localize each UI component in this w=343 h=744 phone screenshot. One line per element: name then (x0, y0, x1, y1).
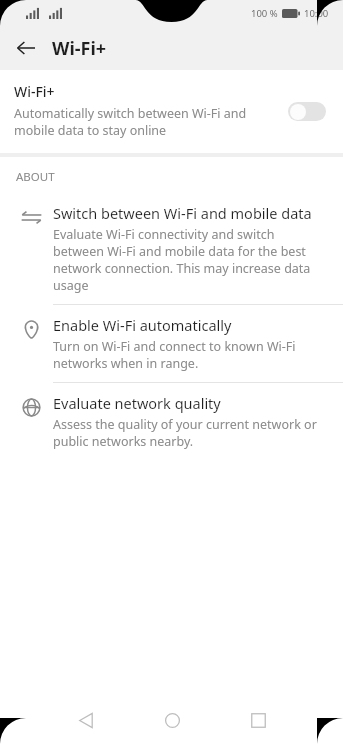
staticText: 100 % (251, 7, 278, 20)
button[interactable]: Home (146, 696, 198, 744)
button[interactable]: Switch between Wi-Fi and mobile data (0, 193, 343, 305)
staticText: Switch between Wi-Fi and mobile data (53, 203, 312, 223)
button[interactable]: Back (60, 696, 112, 744)
button[interactable]: Wi-Fi+ toggle (285, 96, 329, 126)
staticText: Enable Wi-Fi automatically (53, 315, 232, 335)
staticText: 10:00 (304, 7, 329, 20)
button[interactable]: Evaluate network quality (0, 383, 343, 460)
staticText: Automatically switch between Wi-Fi and m… (14, 105, 273, 139)
staticText: Turn on Wi-Fi and connect to known Wi-Fi… (53, 338, 327, 372)
staticText: Evaluate network quality (53, 393, 221, 413)
button[interactable]: Recent apps (232, 696, 284, 744)
staticText: Wi-Fi+ (52, 36, 107, 61)
staticText: Wi-Fi+ (14, 82, 55, 101)
staticText: Evaluate Wi-Fi connectivity and switch b… (53, 226, 327, 294)
button[interactable]: Wi-Fi+ (0, 70, 343, 153)
button[interactable]: Enable Wi-Fi automatically (0, 305, 343, 383)
staticText: Assess the quality of your current netwo… (53, 416, 327, 450)
staticText: ABOUT (16, 169, 55, 185)
button[interactable]: Back (8, 30, 44, 66)
